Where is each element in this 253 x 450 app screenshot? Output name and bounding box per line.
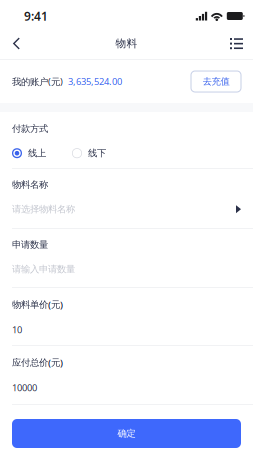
staticText: 3,635,524.00 [68, 75, 122, 88]
staticText: 10 [12, 323, 22, 336]
staticText: 物料名称 [12, 179, 48, 190]
staticText: 应付总价(元) [12, 356, 63, 368]
staticText: 请选择物料名称 [12, 203, 75, 215]
button[interactable]: 去充值 [191, 71, 241, 92]
button[interactable]: 线下 [72, 147, 106, 159]
staticText: 物料 [115, 37, 137, 50]
staticText: 物料单价(元) [12, 298, 63, 310]
button[interactable]: 线上 [12, 147, 46, 159]
staticText: 10000 [12, 381, 37, 394]
button[interactable]: 物料名称 [0, 169, 253, 229]
staticText: 线下 [88, 147, 106, 159]
staticText: 9:41 [24, 8, 48, 24]
button[interactable]: 列表 [221, 28, 252, 59]
staticText: 线上 [28, 147, 46, 159]
staticText: 我的账户(元) [12, 75, 63, 88]
button[interactable]: 返回 [1, 28, 32, 59]
staticText: 确定 [117, 428, 135, 439]
staticText: 去充值 [202, 76, 229, 87]
button[interactable]: 确定 [12, 419, 241, 448]
staticText: 申请数量 [12, 239, 48, 250]
staticText: 付款方式 [12, 123, 48, 134]
staticText: 请输入申请数量 [12, 263, 75, 275]
